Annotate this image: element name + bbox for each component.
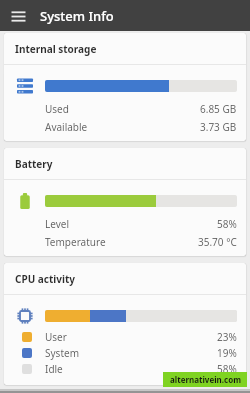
- button[interactable]: Temperature: [45, 233, 237, 251]
- button[interactable]: System: [22, 345, 237, 361]
- staticText: alternativein.com: [170, 374, 241, 385]
- button[interactable]: User: [22, 329, 237, 345]
- staticText: 58%: [217, 217, 237, 231]
- staticText: 3.73 GB: [200, 120, 237, 134]
- staticText: Internal storage: [15, 42, 97, 56]
- staticText: 6.85 GB: [200, 102, 237, 116]
- button[interactable]: Level: [45, 215, 237, 233]
- staticText: Level: [45, 217, 69, 231]
- button[interactable]: CPU activity: [4, 263, 246, 385]
- staticText: 23%: [217, 330, 237, 344]
- staticText: System: [45, 346, 79, 360]
- button[interactable]: alternativein.com: [163, 372, 247, 387]
- button[interactable]: Idle: [22, 361, 237, 377]
- staticText: Idle: [45, 362, 63, 376]
- staticText: Temperature: [45, 235, 106, 249]
- button[interactable]: Internal storage: [4, 33, 246, 141]
- staticText: User: [45, 330, 67, 344]
- staticText: Used: [45, 102, 69, 116]
- staticText: Available: [45, 120, 88, 134]
- staticText: Battery: [15, 157, 53, 171]
- staticText: 58%: [217, 362, 237, 376]
- button[interactable]: [10, 8, 26, 24]
- staticText: System Info: [40, 7, 114, 25]
- staticText: 35.70 °C: [198, 235, 237, 249]
- staticText: CPU activity: [15, 272, 76, 286]
- button[interactable]: Used: [45, 100, 237, 118]
- staticText: 19%: [217, 346, 237, 360]
- button[interactable]: Available: [45, 118, 237, 136]
- button[interactable]: Battery: [4, 148, 246, 256]
